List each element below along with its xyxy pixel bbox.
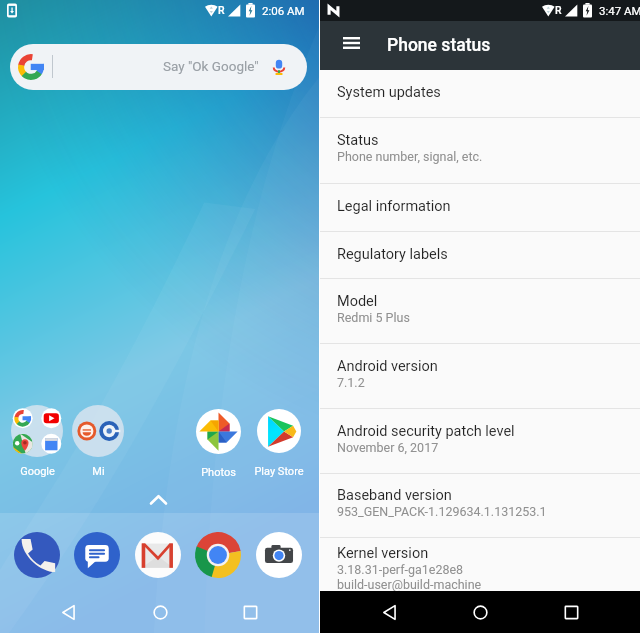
staticText: Kernel version	[337, 545, 429, 562]
staticText: Legal information	[337, 198, 451, 215]
button[interactable]: System updates	[320, 70, 640, 117]
button[interactable]: Search	[10, 44, 307, 90]
staticText: Model	[337, 293, 378, 310]
staticText: Google	[20, 465, 55, 477]
button[interactable]: Home	[139, 591, 181, 633]
staticText: Baseband version	[337, 487, 452, 504]
button[interactable]: Phone	[10, 528, 64, 582]
staticText: Android version	[337, 358, 438, 375]
button[interactable]: Chrome	[191, 528, 245, 582]
button[interactable]: Play Store	[237, 401, 321, 477]
button[interactable]: Kernel version	[320, 538, 640, 618]
button[interactable]: Open navigation menu	[335, 29, 368, 62]
button[interactable]: Back	[48, 591, 90, 633]
staticText: R	[218, 4, 225, 16]
staticText: November 6, 2017	[337, 440, 439, 455]
staticText: Photos	[201, 466, 236, 477]
staticText: Play Store	[254, 465, 304, 477]
button[interactable]: Mi	[56, 401, 140, 477]
staticText: R	[555, 4, 562, 16]
button[interactable]: Google	[0, 401, 79, 477]
staticText: 3.18.31-perf-ga1e28e8 build-user@build-m…	[337, 562, 482, 607]
staticText: Phone status	[387, 35, 491, 56]
staticText: Android security patch level	[337, 423, 515, 440]
staticText: 953_GEN_PACK-1.129634.1.131253.1	[337, 504, 547, 519]
button[interactable]: Home	[459, 591, 501, 633]
button[interactable]: Android version	[320, 344, 640, 408]
button[interactable]: Legal information	[320, 184, 640, 231]
staticText: Mi	[92, 465, 105, 477]
button[interactable]: Back	[369, 591, 411, 633]
staticText: Regulatory labels	[337, 246, 448, 263]
staticText: 3:47 AM	[599, 4, 640, 17]
staticText: 7.1.2	[337, 375, 365, 390]
button[interactable]: Gmail	[131, 528, 185, 582]
staticText: Status	[337, 132, 379, 149]
button[interactable]: Baseband version	[320, 474, 640, 537]
button[interactable]: Photos	[176, 401, 260, 477]
button[interactable]: Android security patch level	[320, 409, 640, 473]
button[interactable]: Status	[320, 118, 640, 183]
button[interactable]: Messages	[70, 528, 124, 582]
staticText: Redmi 5 Plus	[337, 310, 410, 325]
button[interactable]: Recents	[229, 591, 271, 633]
button[interactable]: Regulatory labels	[320, 232, 640, 278]
button[interactable]: Recents	[550, 591, 592, 633]
staticText: Say "Ok Google"	[163, 58, 259, 74]
staticText: System updates	[337, 84, 441, 101]
staticText: 2:06 AM	[262, 4, 305, 17]
staticText: Phone number, signal, etc.	[337, 149, 483, 164]
button[interactable]: Camera	[252, 528, 306, 582]
button[interactable]: Model	[320, 279, 640, 343]
